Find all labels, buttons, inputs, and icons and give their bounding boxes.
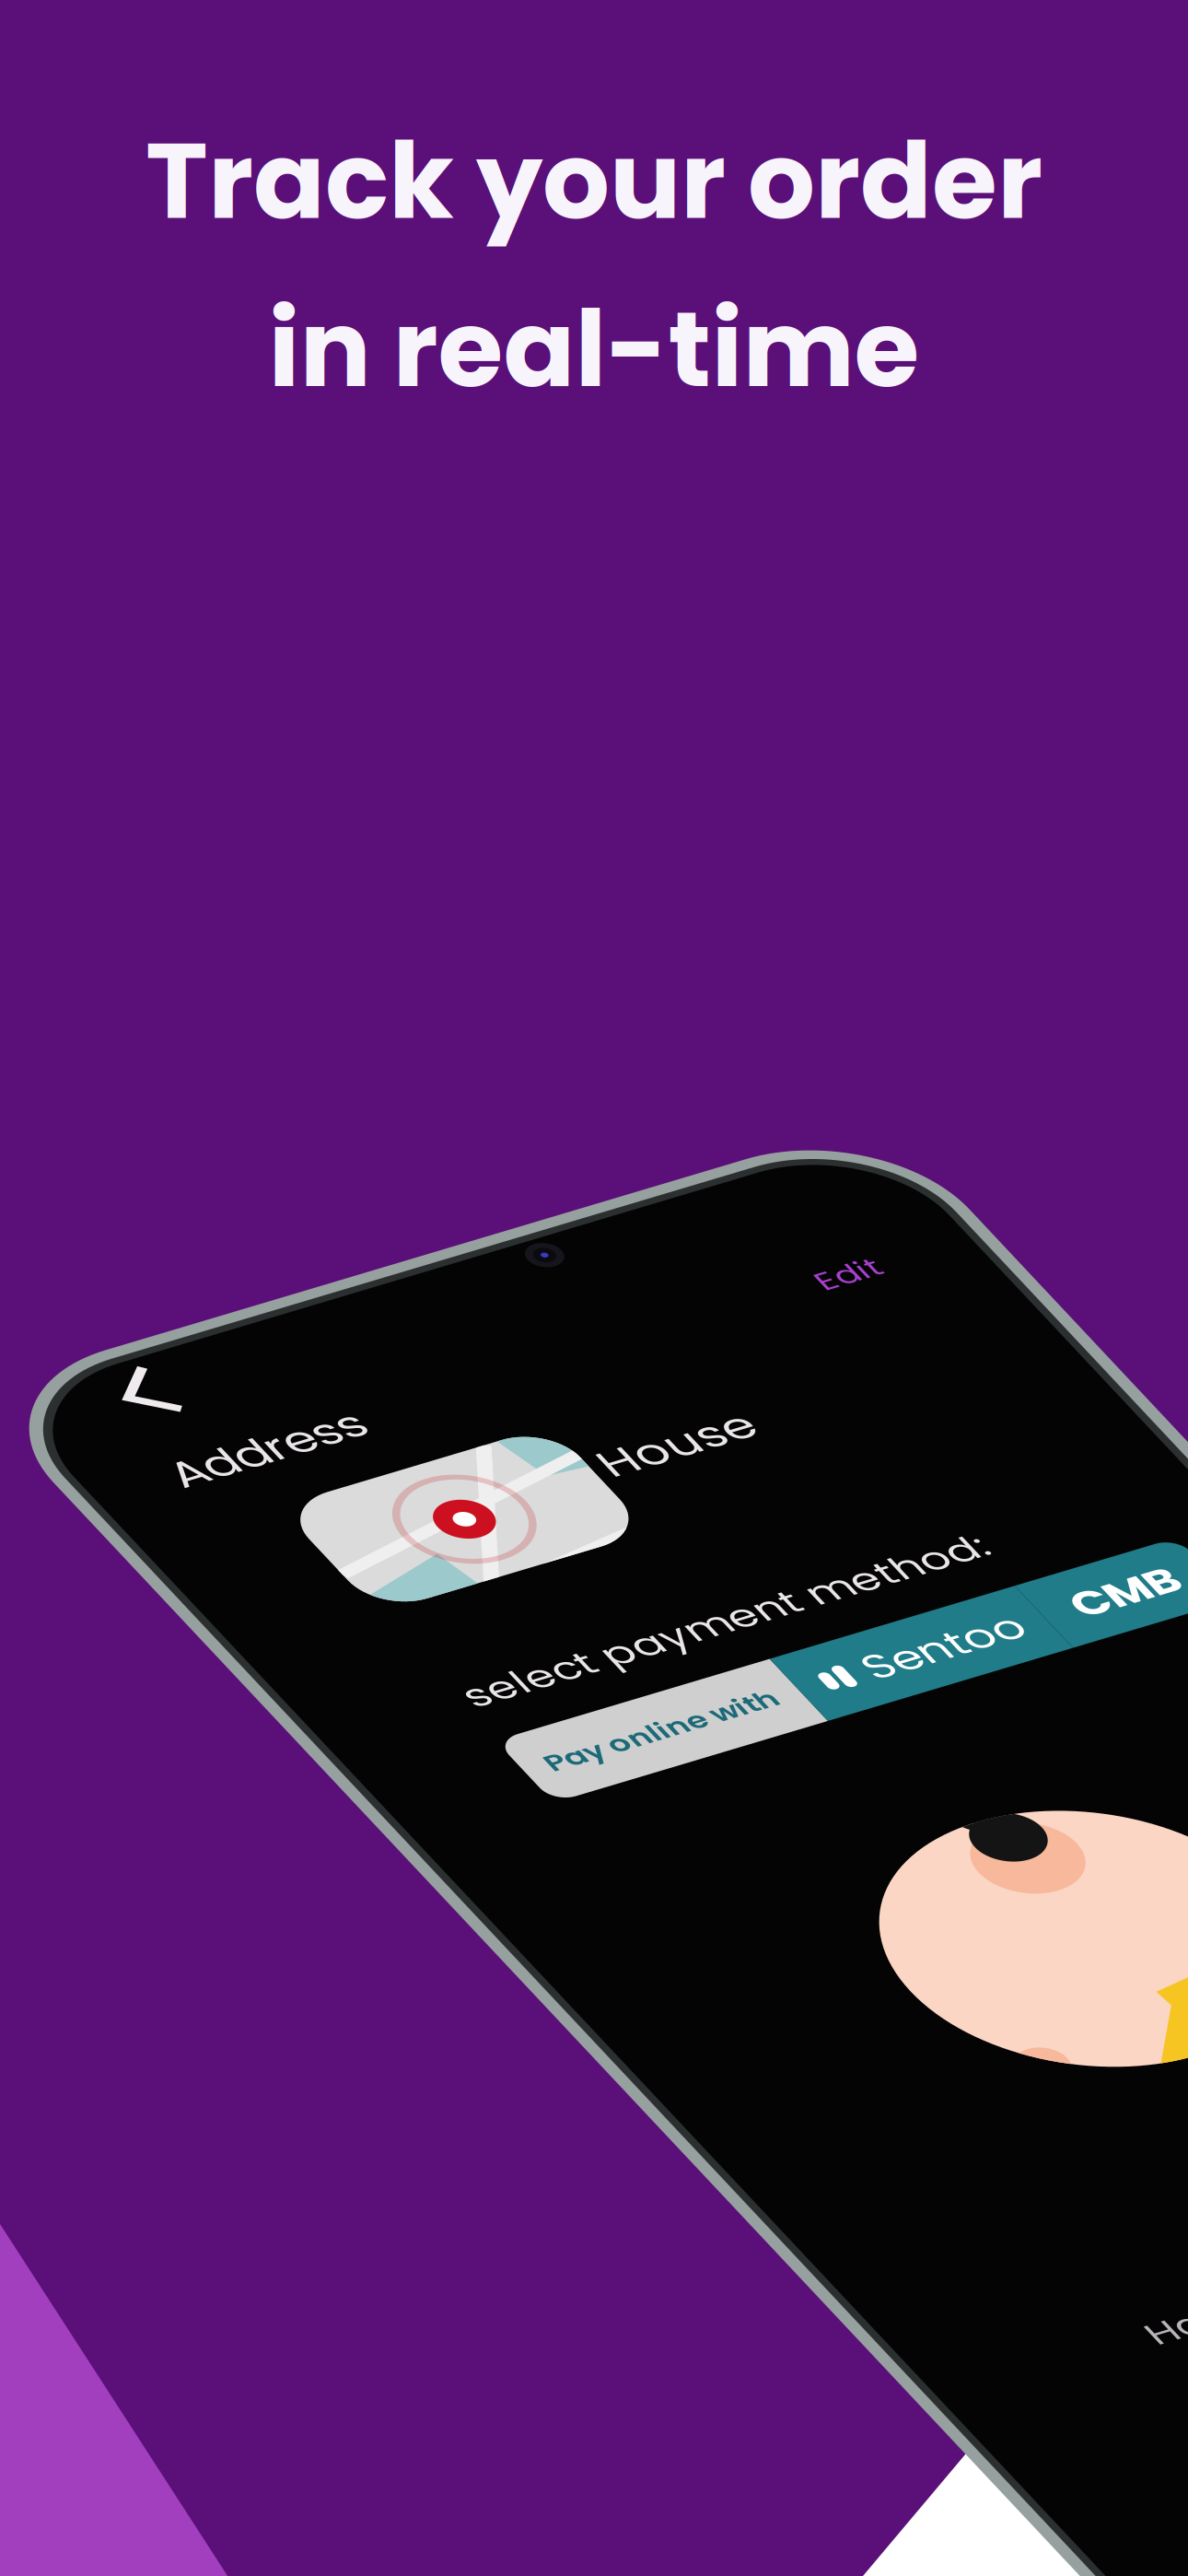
staticText: Track your order [146, 107, 1042, 255]
staticText: select payment method: [68, 210, 282, 234]
staticText: in real-time [268, 275, 920, 423]
